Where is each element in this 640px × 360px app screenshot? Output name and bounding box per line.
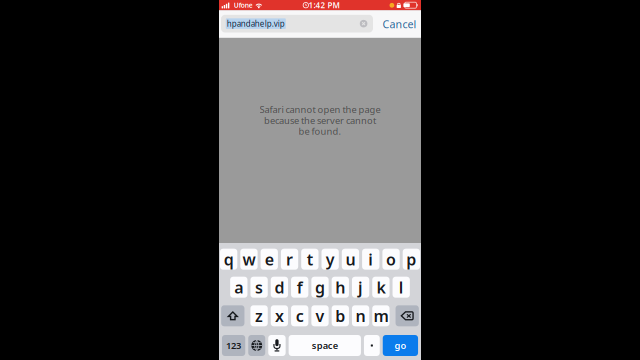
staticText: u bbox=[345, 249, 355, 270]
staticText: q bbox=[224, 249, 234, 270]
button[interactable]: j bbox=[352, 277, 369, 298]
staticText: because the server cannot bbox=[264, 114, 376, 127]
button[interactable]: i bbox=[362, 249, 379, 270]
button[interactable]: space bbox=[289, 335, 361, 356]
staticText: 1:42 PM bbox=[308, 0, 339, 10]
button[interactable]: l bbox=[392, 277, 410, 298]
button[interactable]: d bbox=[271, 277, 288, 298]
staticText: r bbox=[286, 249, 293, 270]
button[interactable]: Next keyboard bbox=[248, 335, 265, 356]
button[interactable]: c bbox=[291, 305, 308, 326]
button[interactable]: m bbox=[372, 305, 389, 326]
staticText: space bbox=[312, 339, 338, 352]
button[interactable]: Delete bbox=[395, 305, 419, 326]
staticText: e bbox=[265, 249, 274, 270]
button[interactable]: h bbox=[332, 277, 349, 298]
staticText: o bbox=[386, 249, 396, 270]
staticText: s bbox=[255, 277, 263, 298]
button[interactable]: q bbox=[220, 249, 237, 270]
staticText: hpandahelp.vip bbox=[227, 18, 285, 29]
button[interactable]: Dictate bbox=[268, 335, 286, 356]
staticText: be found. bbox=[298, 125, 341, 137]
button[interactable]: Cancel bbox=[381, 15, 417, 33]
button[interactable]: y bbox=[321, 249, 339, 270]
button[interactable]: g bbox=[311, 277, 329, 298]
staticText: y bbox=[326, 249, 335, 270]
staticText: d bbox=[274, 277, 284, 298]
button[interactable]: s bbox=[250, 277, 268, 298]
button[interactable]: Shift bbox=[221, 305, 244, 326]
button[interactable]: p bbox=[403, 249, 420, 270]
button[interactable]: t bbox=[301, 249, 318, 270]
staticText: b bbox=[335, 305, 345, 326]
staticText: m bbox=[373, 305, 388, 326]
staticText: x bbox=[275, 305, 284, 326]
button[interactable]: f bbox=[291, 277, 308, 298]
button[interactable]: w bbox=[240, 249, 258, 270]
button[interactable]: v bbox=[311, 305, 329, 326]
button[interactable]: Period bbox=[364, 335, 380, 356]
button[interactable]: o bbox=[382, 249, 400, 270]
button[interactable]: b bbox=[332, 305, 349, 326]
button[interactable]: e bbox=[261, 249, 278, 270]
staticText: n bbox=[356, 305, 366, 326]
button[interactable]: x bbox=[271, 305, 288, 326]
button[interactable]: go bbox=[383, 335, 418, 356]
staticText: c bbox=[296, 305, 304, 326]
staticText: f bbox=[297, 277, 303, 298]
button[interactable]: k bbox=[372, 277, 389, 298]
staticText: t bbox=[307, 249, 313, 270]
button[interactable]: u bbox=[342, 249, 359, 270]
staticText: Cancel bbox=[382, 17, 416, 31]
staticText: j bbox=[358, 277, 363, 298]
staticText: Ufone bbox=[234, 1, 253, 10]
staticText: a bbox=[234, 277, 243, 298]
staticText: 123 bbox=[226, 339, 241, 352]
staticText: v bbox=[315, 305, 324, 326]
staticText: w bbox=[242, 249, 255, 270]
staticText: i bbox=[368, 249, 373, 270]
staticText: Safari cannot open the page bbox=[259, 103, 380, 116]
button[interactable]: r bbox=[281, 249, 298, 270]
button[interactable]: a bbox=[230, 277, 247, 298]
button[interactable]: 123 bbox=[222, 335, 245, 356]
staticText: p bbox=[406, 249, 416, 270]
staticText: z bbox=[255, 305, 263, 326]
button[interactable]: n bbox=[352, 305, 369, 326]
staticText: g bbox=[315, 277, 325, 298]
staticText: go bbox=[394, 339, 406, 352]
staticText: h bbox=[335, 277, 345, 298]
staticText: l bbox=[399, 277, 404, 298]
button[interactable]: z bbox=[250, 305, 268, 326]
staticText: k bbox=[376, 277, 385, 298]
